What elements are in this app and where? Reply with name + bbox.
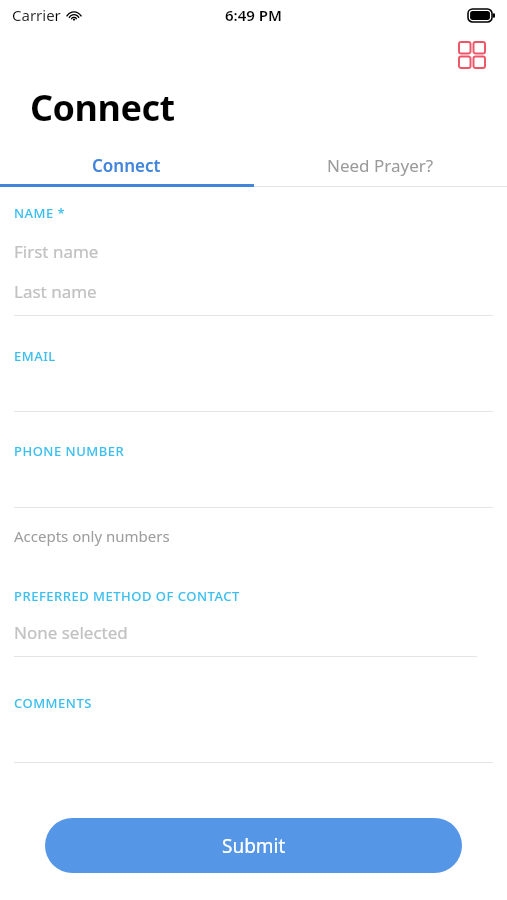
button[interactable]: None selected: [14, 619, 507, 645]
staticText: Submit: [222, 833, 286, 859]
staticText: Need Prayer?: [327, 154, 434, 177]
staticText: None selected: [14, 621, 128, 644]
button[interactable]: Menu: [455, 38, 489, 72]
staticText: PREFERRED METHOD OF CONTACT: [14, 587, 240, 605]
staticText: 6:49 PM: [225, 5, 282, 25]
staticText: COMMENTS: [14, 694, 92, 712]
staticText: PHONE NUMBER: [14, 442, 125, 460]
staticText: Accepts only numbers: [14, 526, 170, 546]
button[interactable]: Connect: [0, 143, 253, 187]
staticText: *: [54, 204, 65, 222]
staticText: Carrier: [12, 5, 61, 25]
button[interactable]: First name: [14, 237, 507, 265]
staticText: Connect: [92, 154, 161, 177]
staticText: First name: [14, 240, 99, 263]
staticText: Connect: [30, 83, 175, 132]
staticText: NAME: [14, 204, 54, 222]
staticText: EMAIL: [14, 347, 56, 365]
staticText: Last name: [14, 280, 97, 303]
button[interactable]: Submit: [45, 818, 462, 873]
button[interactable]: Last name: [14, 277, 507, 305]
button[interactable]: Need Prayer?: [253, 143, 507, 187]
